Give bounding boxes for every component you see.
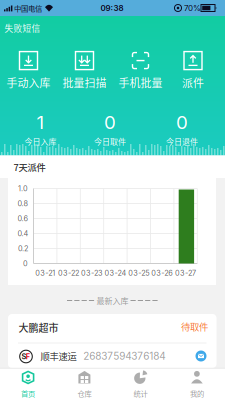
button[interactable]: 0 bbox=[166, 111, 198, 147]
button[interactable]: 0 bbox=[94, 111, 126, 147]
staticText: 03-24 bbox=[104, 269, 126, 277]
staticText: 70% bbox=[184, 3, 201, 13]
staticText: 7天派件 bbox=[13, 160, 45, 174]
staticText: 03-27 bbox=[175, 269, 196, 277]
staticText: 失败短信 bbox=[4, 22, 40, 34]
staticText: 03-21 bbox=[35, 269, 55, 277]
staticText: 手动入库 bbox=[6, 75, 50, 90]
button[interactable]: 首页 bbox=[21, 370, 35, 398]
staticText: 0.4 bbox=[17, 229, 28, 238]
staticText: 首页 bbox=[21, 388, 35, 398]
staticText: F bbox=[26, 352, 30, 361]
staticText: 03-22 bbox=[58, 269, 79, 277]
staticText: 03-23 bbox=[81, 269, 103, 277]
button[interactable]: 手机批量 bbox=[118, 51, 162, 90]
staticText: 中国电信 bbox=[14, 3, 42, 13]
staticText: 最新入库 bbox=[96, 295, 128, 306]
staticText: 0 bbox=[23, 259, 28, 268]
staticText: 大鹏超市 bbox=[18, 320, 58, 335]
staticText: 今日入库 bbox=[24, 135, 56, 147]
staticText: 批量扫描 bbox=[62, 75, 106, 90]
staticText: 1.0 bbox=[18, 184, 28, 193]
button[interactable]: 大鹏超市 bbox=[8, 314, 216, 368]
staticText: 仓库 bbox=[77, 388, 91, 398]
staticText: 待取件 bbox=[181, 320, 208, 333]
button[interactable]: 派件 bbox=[182, 51, 204, 90]
staticText: 派件 bbox=[182, 75, 204, 90]
staticText: 1 bbox=[36, 111, 44, 133]
staticText: S bbox=[22, 352, 27, 361]
button[interactable]: 手动入库 bbox=[6, 51, 50, 90]
button[interactable]: 我的 bbox=[190, 370, 204, 398]
staticText: 0.2 bbox=[18, 244, 28, 253]
staticText: 0.8 bbox=[17, 199, 28, 208]
staticText: 0 bbox=[176, 111, 188, 133]
staticText: 手机批量 bbox=[118, 75, 162, 90]
button[interactable]: 仓库 bbox=[77, 370, 91, 398]
staticText: 26837594376184 bbox=[83, 350, 165, 362]
staticText: 统计 bbox=[134, 388, 148, 398]
button[interactable]: 1 bbox=[24, 111, 56, 147]
staticText: 03-25 bbox=[128, 269, 149, 277]
staticText: 今日取件 bbox=[94, 135, 126, 147]
button[interactable]: 批量扫描 bbox=[62, 51, 106, 90]
staticText: 我的 bbox=[190, 388, 204, 398]
button[interactable]: 失败短信 bbox=[4, 22, 40, 34]
button[interactable]: 统计 bbox=[134, 370, 148, 398]
staticText: 0 bbox=[104, 111, 116, 133]
staticText: 09:38 bbox=[100, 3, 123, 13]
staticText: 今日退件 bbox=[166, 135, 198, 147]
staticText: 顺丰速运 bbox=[41, 349, 77, 363]
staticText: 0.6 bbox=[17, 214, 28, 223]
staticText: 03-26 bbox=[151, 269, 173, 277]
